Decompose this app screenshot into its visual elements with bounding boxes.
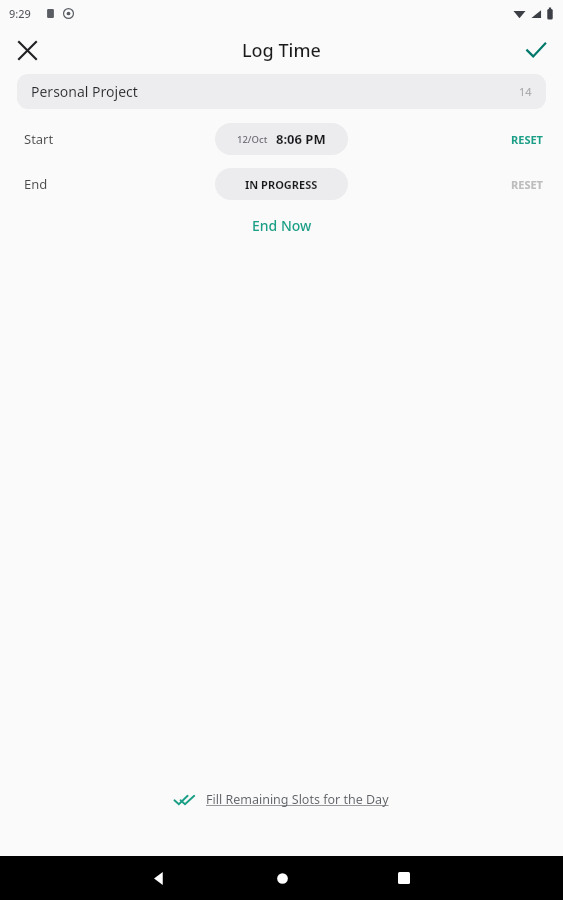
- staticText: Start: [24, 130, 54, 148]
- button[interactable]: Home: [263, 859, 301, 897]
- staticText: 12/Oct: [237, 133, 268, 146]
- button[interactable]: 12/Oct: [215, 123, 348, 155]
- staticText: 8:06 PM: [276, 130, 326, 148]
- staticText: End: [24, 175, 48, 193]
- button[interactable]: Back: [140, 859, 178, 897]
- button[interactable]: Personal Project: [17, 74, 546, 109]
- staticText: Fill Remaining Slots for the Day: [206, 791, 389, 808]
- button[interactable]: Fill Remaining Slots for the Day: [162, 785, 401, 814]
- staticText: RESET: [511, 132, 543, 147]
- button[interactable]: Recent apps: [385, 859, 423, 897]
- button[interactable]: Save: [515, 29, 557, 71]
- staticText: Log Time: [242, 38, 321, 63]
- staticText: Personal Project: [31, 82, 138, 101]
- button[interactable]: RESET: [505, 128, 549, 151]
- staticText: 14: [519, 84, 532, 99]
- staticText: RESET: [511, 177, 543, 192]
- button[interactable]: End Now: [242, 212, 322, 239]
- button[interactable]: IN PROGRESS: [215, 168, 348, 200]
- staticText: 9:29: [9, 6, 31, 21]
- button: RESET: [505, 173, 549, 196]
- staticText: End Now: [252, 216, 312, 235]
- staticText: IN PROGRESS: [245, 177, 318, 192]
- button[interactable]: Close: [6, 29, 48, 71]
